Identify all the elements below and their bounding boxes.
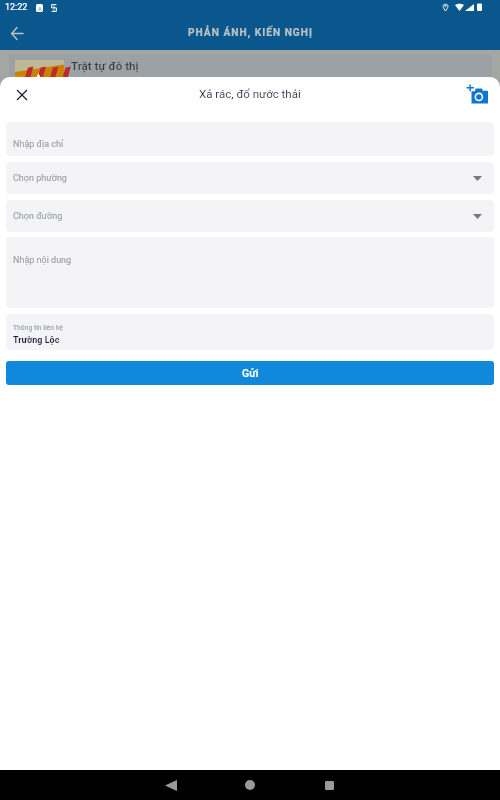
button[interactable]: Thông tin liên hệ <box>6 314 494 350</box>
staticText: A <box>38 5 42 12</box>
button[interactable]: Recent apps <box>316 772 342 798</box>
staticText: Nhập địa chỉ <box>13 139 64 150</box>
staticText: Xả rác, đổ nước thải <box>199 87 301 100</box>
button[interactable]: Back <box>0 18 34 48</box>
button[interactable]: Nhập nội dung <box>6 237 494 308</box>
staticText: PHẢN ÁNH, KIẾN NGHỊ <box>188 27 313 39</box>
button[interactable]: Chọn phường <box>6 162 494 194</box>
button[interactable]: Trật tự đô thị <box>9 54 492 94</box>
staticText: Chọn đường <box>13 211 63 222</box>
button[interactable]: Gửi <box>6 361 494 385</box>
button[interactable]: Add photo <box>462 79 492 109</box>
button[interactable]: Chọn đường <box>6 200 494 232</box>
button[interactable]: Back <box>158 772 184 798</box>
staticText: Gửi <box>242 367 259 379</box>
staticText: Trật tự đô thị <box>71 59 139 73</box>
staticText: Chọn phường <box>13 173 67 184</box>
staticText: Thông tin liên hệ <box>13 324 63 332</box>
staticText: 12:22 <box>5 2 28 13</box>
button[interactable]: Close <box>5 78 39 112</box>
staticText: Trường Lộc <box>13 335 60 346</box>
button[interactable]: Home <box>237 772 263 798</box>
button[interactable]: Nhập địa chỉ <box>6 122 494 156</box>
staticText: Nhập nội dung <box>13 255 72 266</box>
